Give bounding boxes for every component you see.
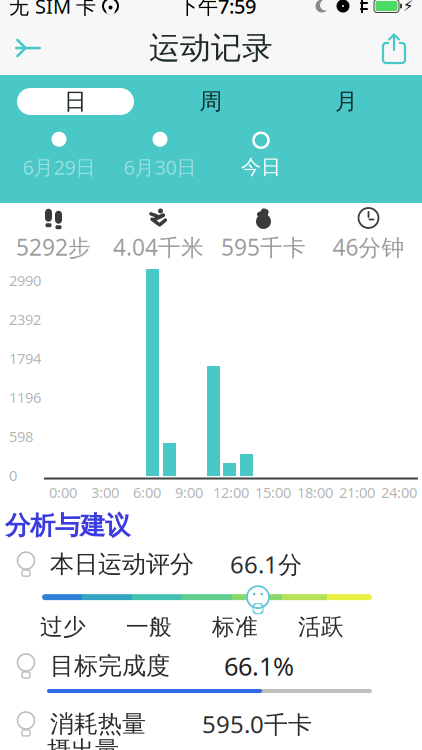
staticText: 下午7:59: [178, 0, 256, 19]
staticText: 12:00: [213, 482, 249, 502]
staticText: 4.04千米: [113, 232, 204, 262]
staticText: 分析与建议: [5, 510, 130, 541]
button[interactable]: 周: [152, 88, 269, 115]
staticText: 5292步: [16, 232, 91, 262]
staticText: 24:00: [381, 482, 417, 502]
staticText: 月: [335, 88, 358, 115]
staticText: 周: [199, 88, 222, 115]
staticText: 过少: [40, 613, 86, 641]
staticText: 标准: [212, 613, 258, 641]
button[interactable]: 6月29日: [8, 133, 109, 179]
staticText: ⚡︎: [403, 0, 413, 14]
staticText: 1196: [9, 387, 41, 407]
button[interactable]: 返回: [0, 21, 56, 75]
staticText: 46分钟: [332, 232, 404, 262]
staticText: 6:00: [133, 482, 161, 502]
staticText: 66.1分: [230, 548, 302, 580]
button[interactable]: 分享: [366, 21, 422, 75]
staticText: 消耗热量: [50, 709, 146, 739]
staticText: 18:00: [297, 482, 333, 502]
button[interactable]: 6月30日: [109, 133, 210, 179]
button[interactable]: 日: [17, 88, 134, 115]
staticText: 日: [64, 88, 87, 115]
staticText: 活跃: [298, 613, 344, 641]
staticText: 21:00: [339, 482, 375, 502]
staticText: 66.1%: [224, 649, 294, 683]
button[interactable]: 月: [288, 88, 405, 115]
staticText: 9:00: [175, 482, 203, 502]
staticText: 摄出量: [47, 735, 119, 750]
button[interactable]: 今日: [210, 133, 311, 179]
staticText: 6月29日: [22, 154, 95, 180]
staticText: 运动记录: [149, 29, 273, 67]
staticText: 1794: [9, 348, 41, 368]
staticText: 目标完成度: [50, 651, 170, 681]
staticText: 0:00: [49, 482, 77, 502]
staticText: 598: [9, 426, 33, 446]
staticText: 595.0千卡: [202, 708, 312, 740]
staticText: 本日运动评分: [50, 549, 194, 579]
staticText: 无 SIM 卡: [9, 0, 96, 19]
staticText: 一般: [126, 613, 172, 641]
staticText: 2990: [9, 270, 41, 290]
staticText: 今日: [241, 155, 281, 179]
staticText: 2392: [9, 309, 41, 329]
staticText: 6月30日: [123, 154, 196, 180]
staticText: 595千卡: [221, 232, 306, 262]
staticText: 15:00: [255, 482, 291, 502]
staticText: 3:00: [91, 482, 119, 502]
staticText: 0: [9, 465, 17, 485]
